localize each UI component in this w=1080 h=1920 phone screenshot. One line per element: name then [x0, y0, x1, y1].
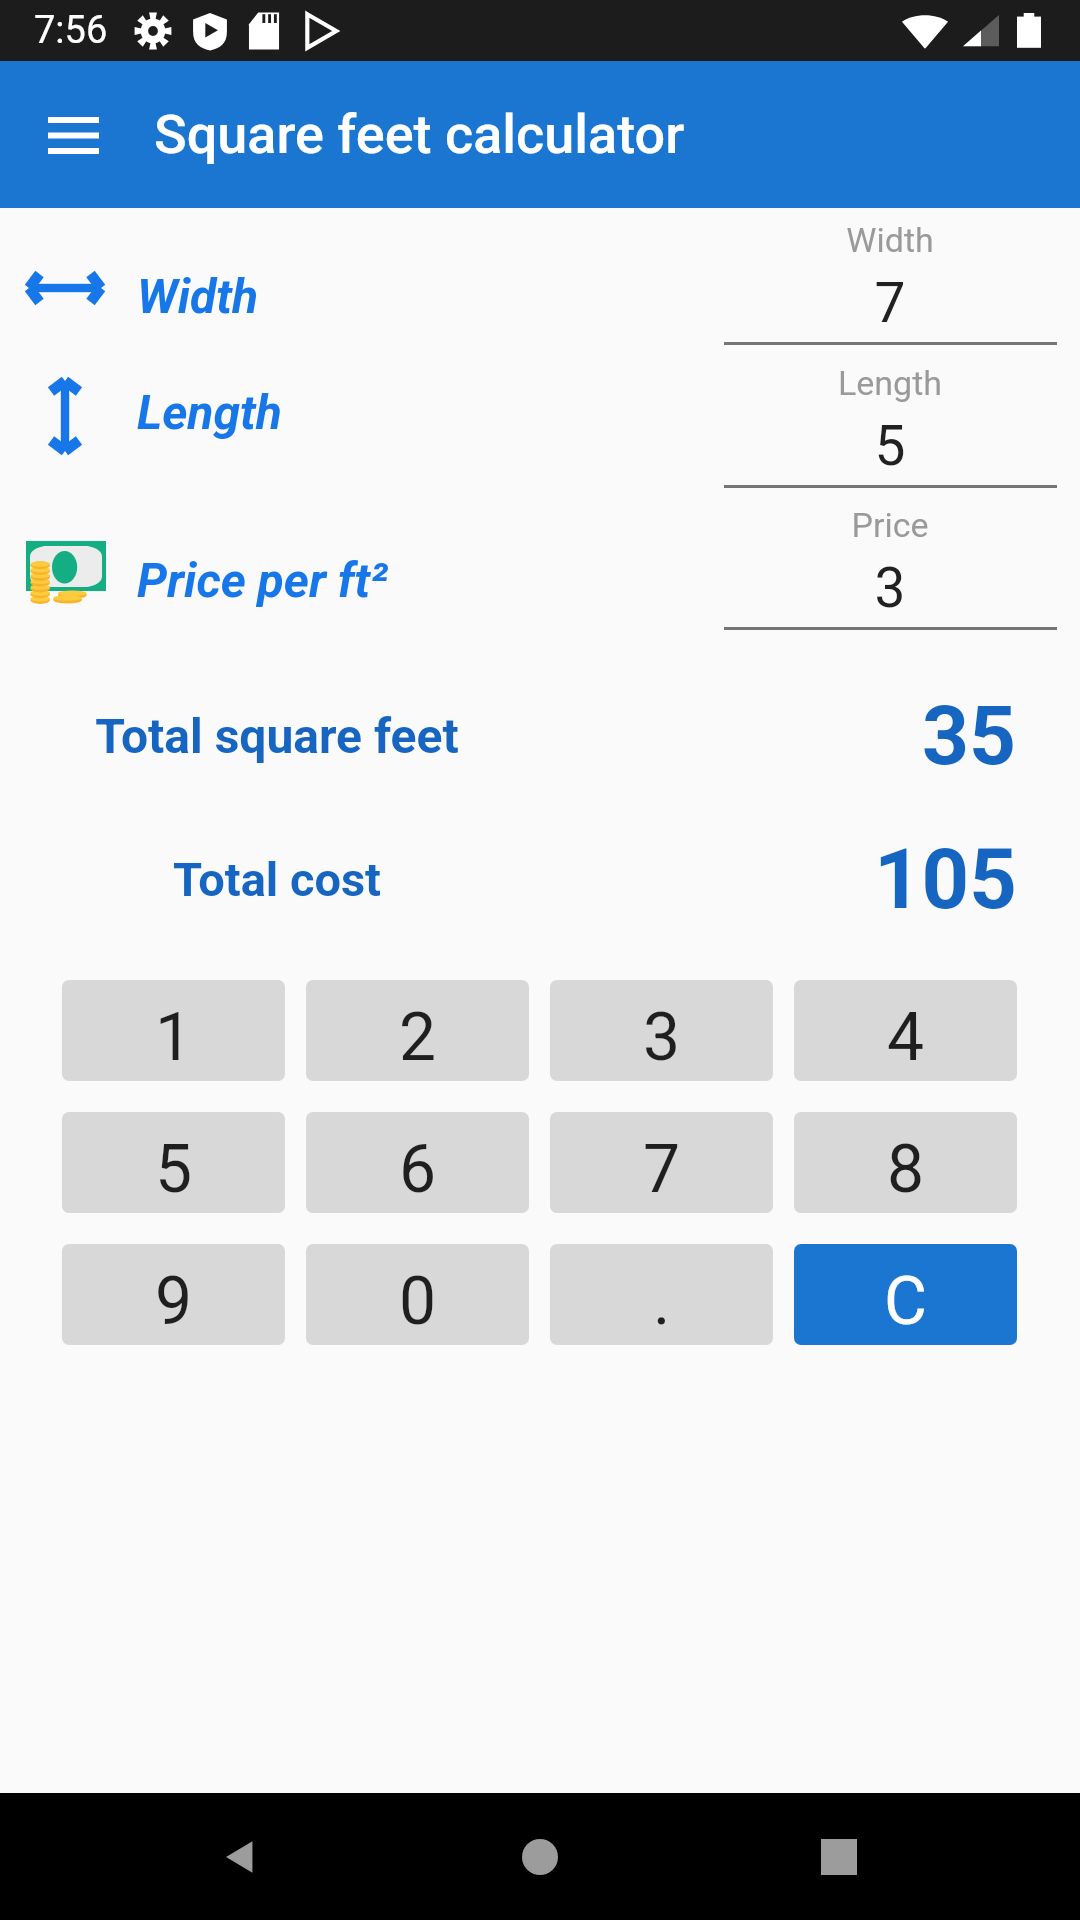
staticText: Square feet calculator	[154, 103, 685, 166]
staticText: 2	[399, 999, 437, 1076]
staticText: 5	[155, 1131, 193, 1208]
button[interactable]: 1	[62, 980, 285, 1081]
staticText: Total square feet	[0, 708, 554, 764]
staticText: Price	[700, 505, 1080, 545]
staticText: 5	[700, 414, 1080, 478]
staticText: Width	[700, 220, 1080, 260]
staticText: 0	[399, 1263, 437, 1340]
button[interactable]: .	[550, 1244, 773, 1345]
staticText: 3	[643, 999, 681, 1076]
staticText: 105	[874, 831, 1017, 928]
staticText: Length	[700, 363, 1080, 403]
button[interactable]: C	[794, 1244, 1017, 1345]
staticText: 35	[922, 688, 1017, 784]
staticText: 7	[643, 1131, 681, 1208]
staticText: 9	[155, 1263, 193, 1340]
staticText: 8	[887, 1131, 925, 1208]
button[interactable]: Open navigation drawer	[24, 86, 122, 184]
button[interactable]: 9	[62, 1244, 285, 1345]
staticText: Width	[137, 268, 259, 324]
button[interactable]: Home	[513, 1830, 567, 1884]
button[interactable]: 5	[62, 1112, 285, 1213]
button[interactable]: Recent apps	[812, 1830, 866, 1884]
staticText: 4	[887, 999, 925, 1076]
staticText: 6	[399, 1131, 437, 1208]
button[interactable]: 2	[306, 980, 529, 1081]
staticText: C	[884, 1263, 927, 1340]
staticText: 7	[700, 271, 1080, 335]
button[interactable]: Back	[214, 1830, 268, 1884]
staticText: Price per ft²	[137, 552, 388, 608]
staticText: Length	[137, 384, 282, 440]
button[interactable]: 4	[794, 980, 1017, 1081]
button[interactable]: 3	[550, 980, 773, 1081]
button[interactable]: 8	[794, 1112, 1017, 1213]
staticText: 7:56	[34, 8, 108, 53]
button[interactable]: 0	[306, 1244, 529, 1345]
button[interactable]: 7	[550, 1112, 773, 1213]
staticText: 1	[155, 999, 193, 1076]
staticText: Total cost	[0, 852, 554, 907]
button[interactable]: 6	[306, 1112, 529, 1213]
staticText: .	[653, 1263, 671, 1340]
staticText: 3	[700, 556, 1080, 620]
